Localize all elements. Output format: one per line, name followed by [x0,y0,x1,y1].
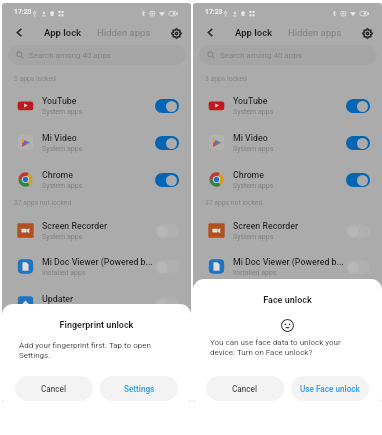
staticText: 17:23 [205,8,223,16]
button[interactable]: On [346,173,370,187]
staticText: Mi Doc Viewer (Powered b... [42,257,153,267]
staticText: Search among 40 apps [220,51,302,60]
staticText: Installed apps [233,269,277,277]
button[interactable]: Cancel [206,376,284,401]
staticText: System apps [233,182,274,190]
staticText: System apps [42,108,83,116]
button[interactable]: Mi Doc Viewer (Powered b... [193,248,382,285]
staticText: Use Face unlock [300,384,360,394]
staticText: System apps [42,233,83,241]
button[interactable]: Cancel [15,376,93,401]
button[interactable]: Back [11,24,28,41]
button[interactable]: Search among 40 apps [199,45,377,65]
button[interactable]: Settings [100,376,178,401]
button[interactable]: On [346,99,370,113]
button[interactable]: Mi Video [193,124,382,161]
staticText: System apps [42,182,83,190]
staticText: Settings [124,384,155,394]
button[interactable]: Chrome [2,161,191,198]
staticText: Mi Doc Viewer (Powered b... [233,257,344,267]
staticText: System apps [233,145,274,153]
staticText: Screen Recorder [42,221,108,231]
staticText: System apps [233,108,274,116]
staticText: Mi Video [42,133,77,143]
staticText: Chrome [233,170,264,180]
button[interactable]: Off [155,224,179,238]
button[interactable]: Search among 40 apps [8,45,186,65]
staticText: Updater [233,294,265,304]
button[interactable]: Off [155,297,179,311]
staticText: Chrome [42,170,73,180]
button[interactable]: Screen Recorder [2,212,191,249]
staticText: 37 apps not locked [14,199,72,207]
staticText: App lock [44,27,82,38]
button[interactable]: YouTube [193,87,382,124]
button[interactable]: App lock [235,24,273,41]
staticText: Face unlock [193,295,382,306]
staticText: 17:23 [14,8,32,16]
button[interactable]: Screen Recorder [193,212,382,249]
staticText: Updater [42,294,74,304]
button[interactable]: YouTube [2,87,191,124]
staticText: Cancel [41,384,67,394]
staticText: Mi Video [233,133,268,143]
button[interactable]: Use Face unlock [291,376,369,401]
button[interactable]: App lock [44,24,82,41]
staticText: YouTube [42,96,77,106]
staticText: Hidden apps [288,27,342,38]
button[interactable]: Off [346,260,370,274]
button[interactable]: Mi Doc Viewer (Powered b... [2,248,191,285]
staticText: Add your fingerprint first. Tap to open … [19,341,165,360]
button[interactable]: Off [155,260,179,274]
staticText: App lock [235,27,273,38]
button[interactable]: On [346,136,370,150]
staticText: System apps [233,233,274,241]
staticText: Fingerprint unlock [2,320,191,331]
button[interactable]: Hidden apps [288,24,342,41]
staticText: 3 apps locked [14,75,56,83]
staticText: Screen Recorder [233,221,299,231]
staticText: 37 apps not locked [205,199,263,207]
staticText: You can use face data to unlock your dev… [210,338,366,357]
staticText: Hidden apps [97,27,151,38]
button[interactable]: Settings [359,25,375,41]
button[interactable]: On [155,173,179,187]
button[interactable]: On [155,136,179,150]
button[interactable]: Settings [168,25,184,41]
staticText: YouTube [233,96,268,106]
staticText: 3 apps locked [205,75,247,83]
button[interactable]: On [155,99,179,113]
button[interactable]: Off [346,224,370,238]
button[interactable]: Chrome [193,161,382,198]
button[interactable]: Updater [193,285,382,322]
staticText: Cancel [232,384,258,394]
button[interactable]: Mi Video [2,124,191,161]
button[interactable]: Hidden apps [97,24,151,41]
staticText: Installed apps [42,269,86,277]
staticText: System apps [42,145,83,153]
staticText: Search among 40 apps [29,51,111,60]
button[interactable]: Updater [2,285,191,322]
button[interactable]: Back [202,24,219,41]
